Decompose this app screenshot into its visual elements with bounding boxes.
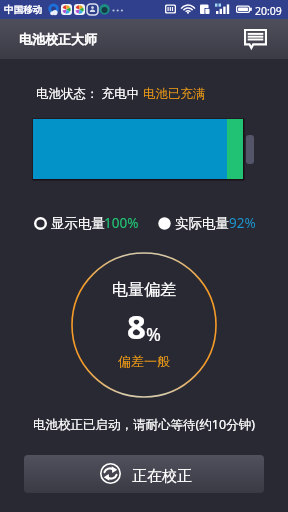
staticText: 100% <box>104 214 139 232</box>
button[interactable]: 实际电量 <box>158 214 256 232</box>
button[interactable]: Messages <box>238 22 272 56</box>
staticText: % <box>146 322 161 347</box>
staticText: 电池已充满 <box>143 86 206 102</box>
staticText: 显示电量 <box>51 215 105 232</box>
button[interactable]: 显示电量 <box>34 214 140 232</box>
staticText: 偏差一般 <box>118 353 170 369</box>
staticText: 电池状态： 充电中 <box>36 85 143 102</box>
staticText: 正在校正 <box>132 467 192 486</box>
button[interactable]: 正在校正 <box>24 455 264 493</box>
staticText: 电池校正已启动，请耐心等待(约10分钟) <box>0 416 288 433</box>
staticText: 中国移动 <box>4 4 42 16</box>
staticText: 实际电量 <box>175 215 229 232</box>
staticText: 20:09 <box>255 4 282 18</box>
staticText: 电池校正大师 <box>19 31 97 47</box>
staticText: 8 <box>127 304 146 349</box>
staticText: 92% <box>229 214 256 232</box>
staticText: 电量偏差 <box>112 280 176 300</box>
